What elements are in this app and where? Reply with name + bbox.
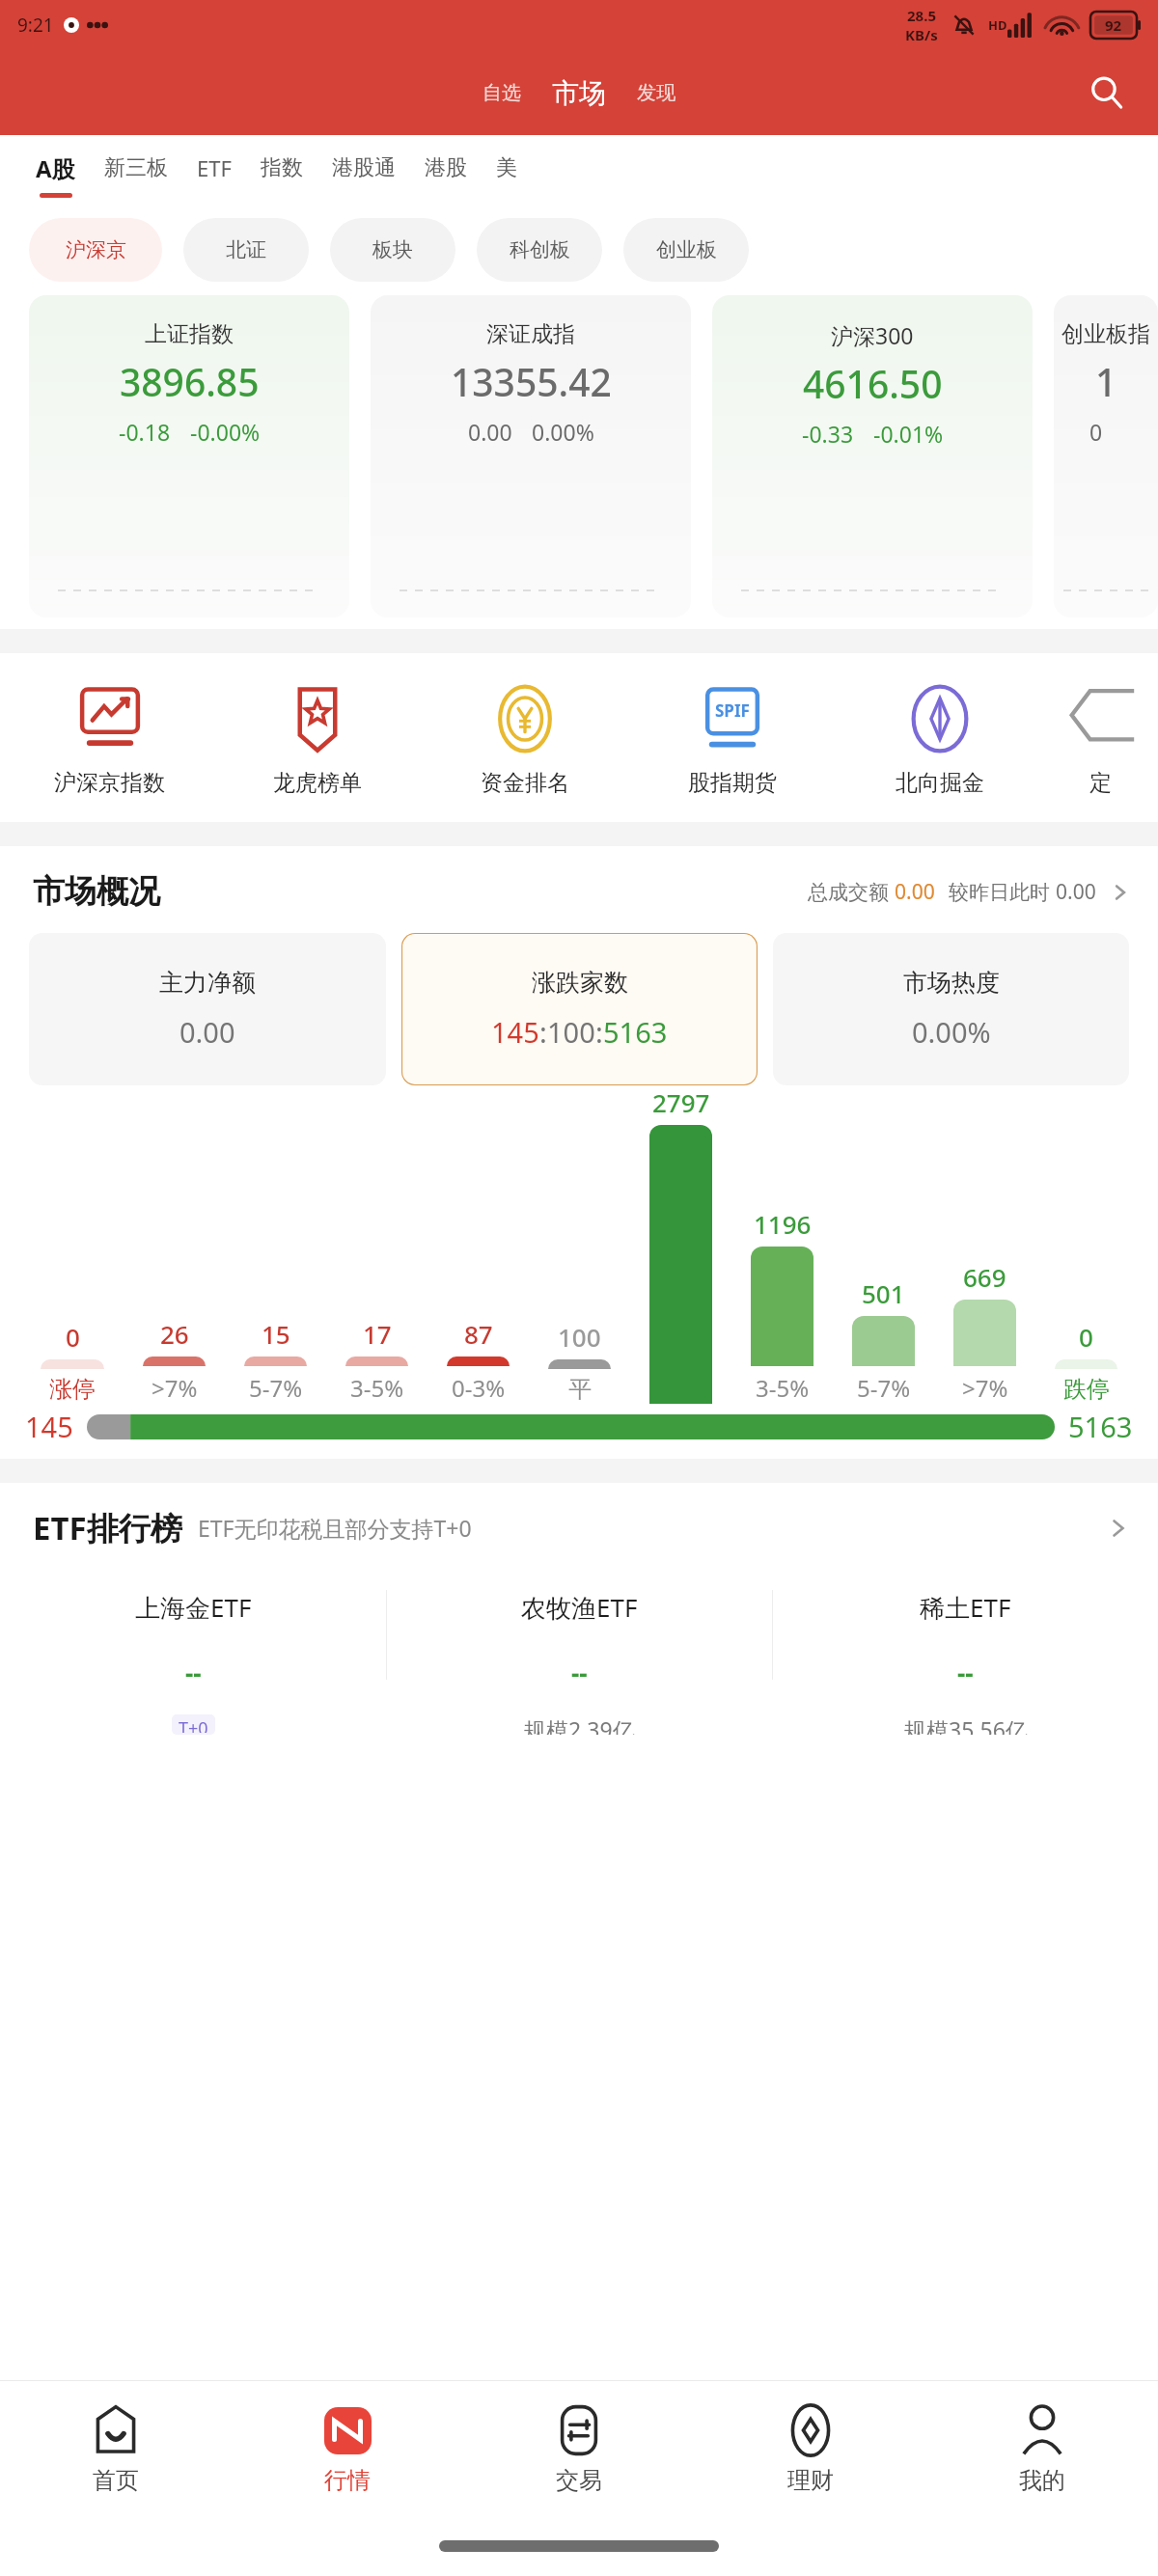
- button[interactable]: 主力净额: [29, 933, 386, 1085]
- staticText: 沪深京指数: [54, 769, 165, 797]
- staticText: 3-5%: [756, 1372, 810, 1404]
- staticText: 科创板: [510, 237, 570, 262]
- staticText: 跌停: [1063, 1375, 1110, 1404]
- button[interactable]: 首页: [0, 2381, 232, 2516]
- staticText: 145: [491, 1013, 539, 1051]
- staticText: 北向掘金: [896, 769, 984, 797]
- staticText: 主力净额: [159, 968, 256, 998]
- staticText: 9:21: [17, 13, 54, 38]
- staticText: 理财: [787, 2466, 834, 2495]
- button[interactable]: 北证: [183, 218, 309, 282]
- staticText: 0.00%: [912, 1013, 991, 1051]
- button[interactable]: 创业板指: [1054, 295, 1158, 617]
- button[interactable]: 市场: [542, 72, 616, 114]
- staticText: 0: [1089, 417, 1103, 447]
- button[interactable]: 美: [482, 154, 532, 195]
- button[interactable]: 上海金ETF: [0, 1590, 386, 1735]
- staticText: 0: [1079, 1320, 1093, 1354]
- staticText: A股: [36, 152, 75, 184]
- staticText: 农牧渔ETF: [521, 1590, 638, 1625]
- button[interactable]: 北向掘金: [836, 682, 1043, 797]
- button[interactable]: 行情: [232, 2381, 463, 2516]
- staticText: >7%: [152, 1372, 198, 1404]
- staticText: 上海金ETF: [135, 1590, 252, 1625]
- button[interactable]: 定: [1043, 682, 1158, 797]
- button[interactable]: 理财: [695, 2381, 926, 2516]
- staticText: -0.00%: [190, 417, 261, 447]
- button[interactable]: 涨跌家数: [401, 933, 758, 1085]
- staticText: 股指期货: [688, 769, 777, 797]
- staticText: 0.00: [895, 878, 935, 906]
- staticText: 1: [1095, 356, 1117, 407]
- staticText: 上证指数: [145, 320, 234, 348]
- button[interactable]: 深证成指: [371, 295, 691, 617]
- staticText: --: [571, 1656, 588, 1689]
- staticText: ETF: [197, 153, 232, 182]
- staticText: 0.00: [468, 417, 512, 447]
- button[interactable]: 港股: [410, 154, 482, 195]
- staticText: 5-7%: [857, 1372, 911, 1404]
- staticText: 28.5: [907, 6, 936, 25]
- staticText: 涨跌家数: [532, 968, 628, 998]
- staticText: 87: [464, 1317, 493, 1351]
- button[interactable]: 港股通: [317, 154, 410, 195]
- button[interactable]: 新三板: [90, 154, 182, 195]
- staticText: 100: [558, 1320, 601, 1354]
- staticText: 资金排名: [481, 769, 569, 797]
- staticText: 发现: [637, 81, 675, 105]
- staticText: 0.00%: [532, 417, 594, 447]
- button[interactable]: 创业板: [623, 218, 749, 282]
- button[interactable]: ETF排行榜: [33, 1506, 1133, 1549]
- staticText: 15: [262, 1317, 290, 1351]
- staticText: 涨停: [49, 1375, 96, 1404]
- staticText: 创业板: [656, 237, 717, 262]
- button[interactable]: ETF: [182, 153, 246, 196]
- staticText: 92: [1105, 15, 1122, 35]
- button[interactable]: 交易: [463, 2381, 695, 2516]
- button[interactable]: 发现: [627, 75, 685, 111]
- button[interactable]: 指数: [246, 154, 317, 195]
- button[interactable]: 市场热度: [773, 933, 1129, 1085]
- staticText: 首页: [93, 2466, 139, 2495]
- staticText: 100: [547, 1013, 595, 1051]
- button[interactable]: 板块: [330, 218, 455, 282]
- button[interactable]: 我的: [926, 2381, 1158, 2516]
- staticText: 0.00: [179, 1013, 235, 1051]
- button[interactable]: 上证指数: [29, 295, 349, 617]
- staticText: :: [595, 1013, 603, 1051]
- staticText: 沪深京: [66, 237, 126, 262]
- staticText: 自选: [482, 81, 521, 105]
- button[interactable]: 农牧渔ETF: [387, 1590, 772, 1735]
- staticText: 669: [963, 1260, 1006, 1294]
- staticText: 规模35.56亿: [904, 1714, 1028, 1735]
- button[interactable]: SPIF: [628, 682, 836, 797]
- staticText: -0.18: [119, 417, 171, 447]
- button[interactable]: 科创板: [477, 218, 602, 282]
- button[interactable]: 龙虎榜单: [213, 682, 421, 797]
- staticText: 定: [1089, 769, 1112, 797]
- button[interactable]: 自选: [473, 75, 531, 111]
- button[interactable]: 沪深京指数: [6, 682, 213, 797]
- button[interactable]: 沪深京: [29, 218, 162, 282]
- staticText: ETF排行榜: [33, 1506, 182, 1549]
- button[interactable]: 稀土ETF: [773, 1590, 1158, 1735]
- staticText: 13355.42: [451, 356, 612, 407]
- staticText: 0-3%: [452, 1372, 506, 1404]
- staticText: SPIF: [715, 699, 750, 722]
- staticText: T+0: [179, 1716, 208, 1733]
- staticText: 创业板指: [1061, 320, 1150, 348]
- staticText: 0.00: [1056, 878, 1096, 906]
- button[interactable]: 总成交额: [808, 878, 1133, 906]
- button[interactable]: A股: [21, 152, 90, 198]
- staticText: 行情: [324, 2466, 371, 2495]
- staticText: KB/s: [905, 25, 938, 44]
- staticText: 港股通: [332, 154, 396, 181]
- staticText: 5-7%: [249, 1372, 303, 1404]
- staticText: --: [957, 1656, 974, 1689]
- button[interactable]: 资金排名: [421, 682, 628, 797]
- staticText: 26: [160, 1317, 189, 1351]
- staticText: 501: [862, 1276, 905, 1310]
- staticText: 交易: [556, 2466, 602, 2495]
- button[interactable]: Search: [1081, 67, 1133, 119]
- button[interactable]: 沪深300: [712, 295, 1033, 617]
